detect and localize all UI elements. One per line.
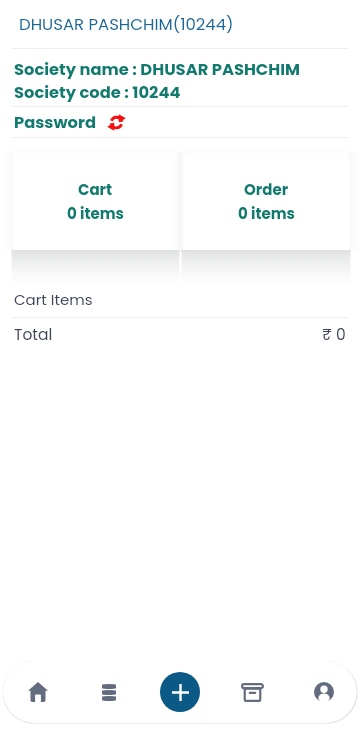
staticText: Order <box>244 179 289 200</box>
button[interactable]: Order <box>183 153 349 250</box>
staticText: DHUSAR PASHCHIM(10244) <box>19 13 234 36</box>
button[interactable]: Home <box>2 661 73 723</box>
button[interactable]: Add <box>160 672 200 712</box>
button[interactable]: DHUSAR PASHCHIM(10244) <box>0 0 360 48</box>
button[interactable]: Password <box>14 107 360 137</box>
staticText: Society name : DHUSAR PASHCHIM <box>14 58 300 81</box>
button[interactable]: Cart Items <box>14 281 360 317</box>
button[interactable]: Refresh password <box>107 113 126 132</box>
button[interactable]: Total <box>14 318 346 352</box>
button[interactable]: Account <box>288 661 360 723</box>
button[interactable]: Archive <box>216 661 288 723</box>
button[interactable]: Cart <box>13 153 178 250</box>
staticText: Password <box>14 111 96 134</box>
staticText: 0 items <box>67 203 124 224</box>
staticText: Cart Items <box>14 289 93 310</box>
staticText: Total <box>14 324 53 346</box>
button[interactable]: Stock <box>73 661 144 723</box>
button[interactable]: Society name : DHUSAR PASHCHIM <box>0 49 360 106</box>
staticText: Cart <box>78 179 113 200</box>
staticText: ₹ 0 <box>322 324 346 346</box>
staticText: 0 items <box>238 203 295 224</box>
staticText: Society code : 10244 <box>14 81 181 104</box>
